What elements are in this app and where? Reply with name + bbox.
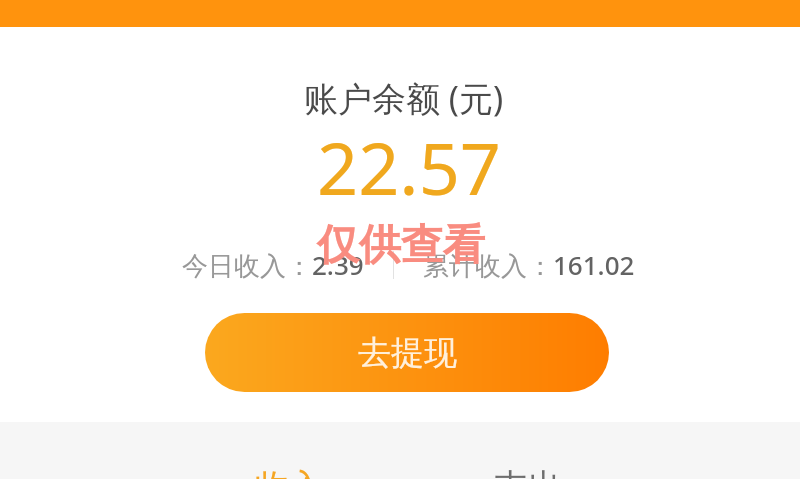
- button[interactable]: 支出: [408, 422, 647, 479]
- button[interactable]: 收入: [169, 422, 408, 479]
- staticText: 支出: [494, 465, 562, 479]
- staticText: 今日收入：2.39: [182, 247, 364, 283]
- button[interactable]: 去提现: [205, 313, 609, 392]
- staticText: 账户余额 (元): [304, 75, 504, 121]
- staticText: 22.57: [317, 118, 502, 216]
- staticText: 去提现: [358, 332, 457, 374]
- staticText: 仅供查看: [317, 219, 485, 272]
- staticText: 收入: [255, 465, 323, 479]
- staticText: 累计收入：161.02: [423, 247, 635, 283]
